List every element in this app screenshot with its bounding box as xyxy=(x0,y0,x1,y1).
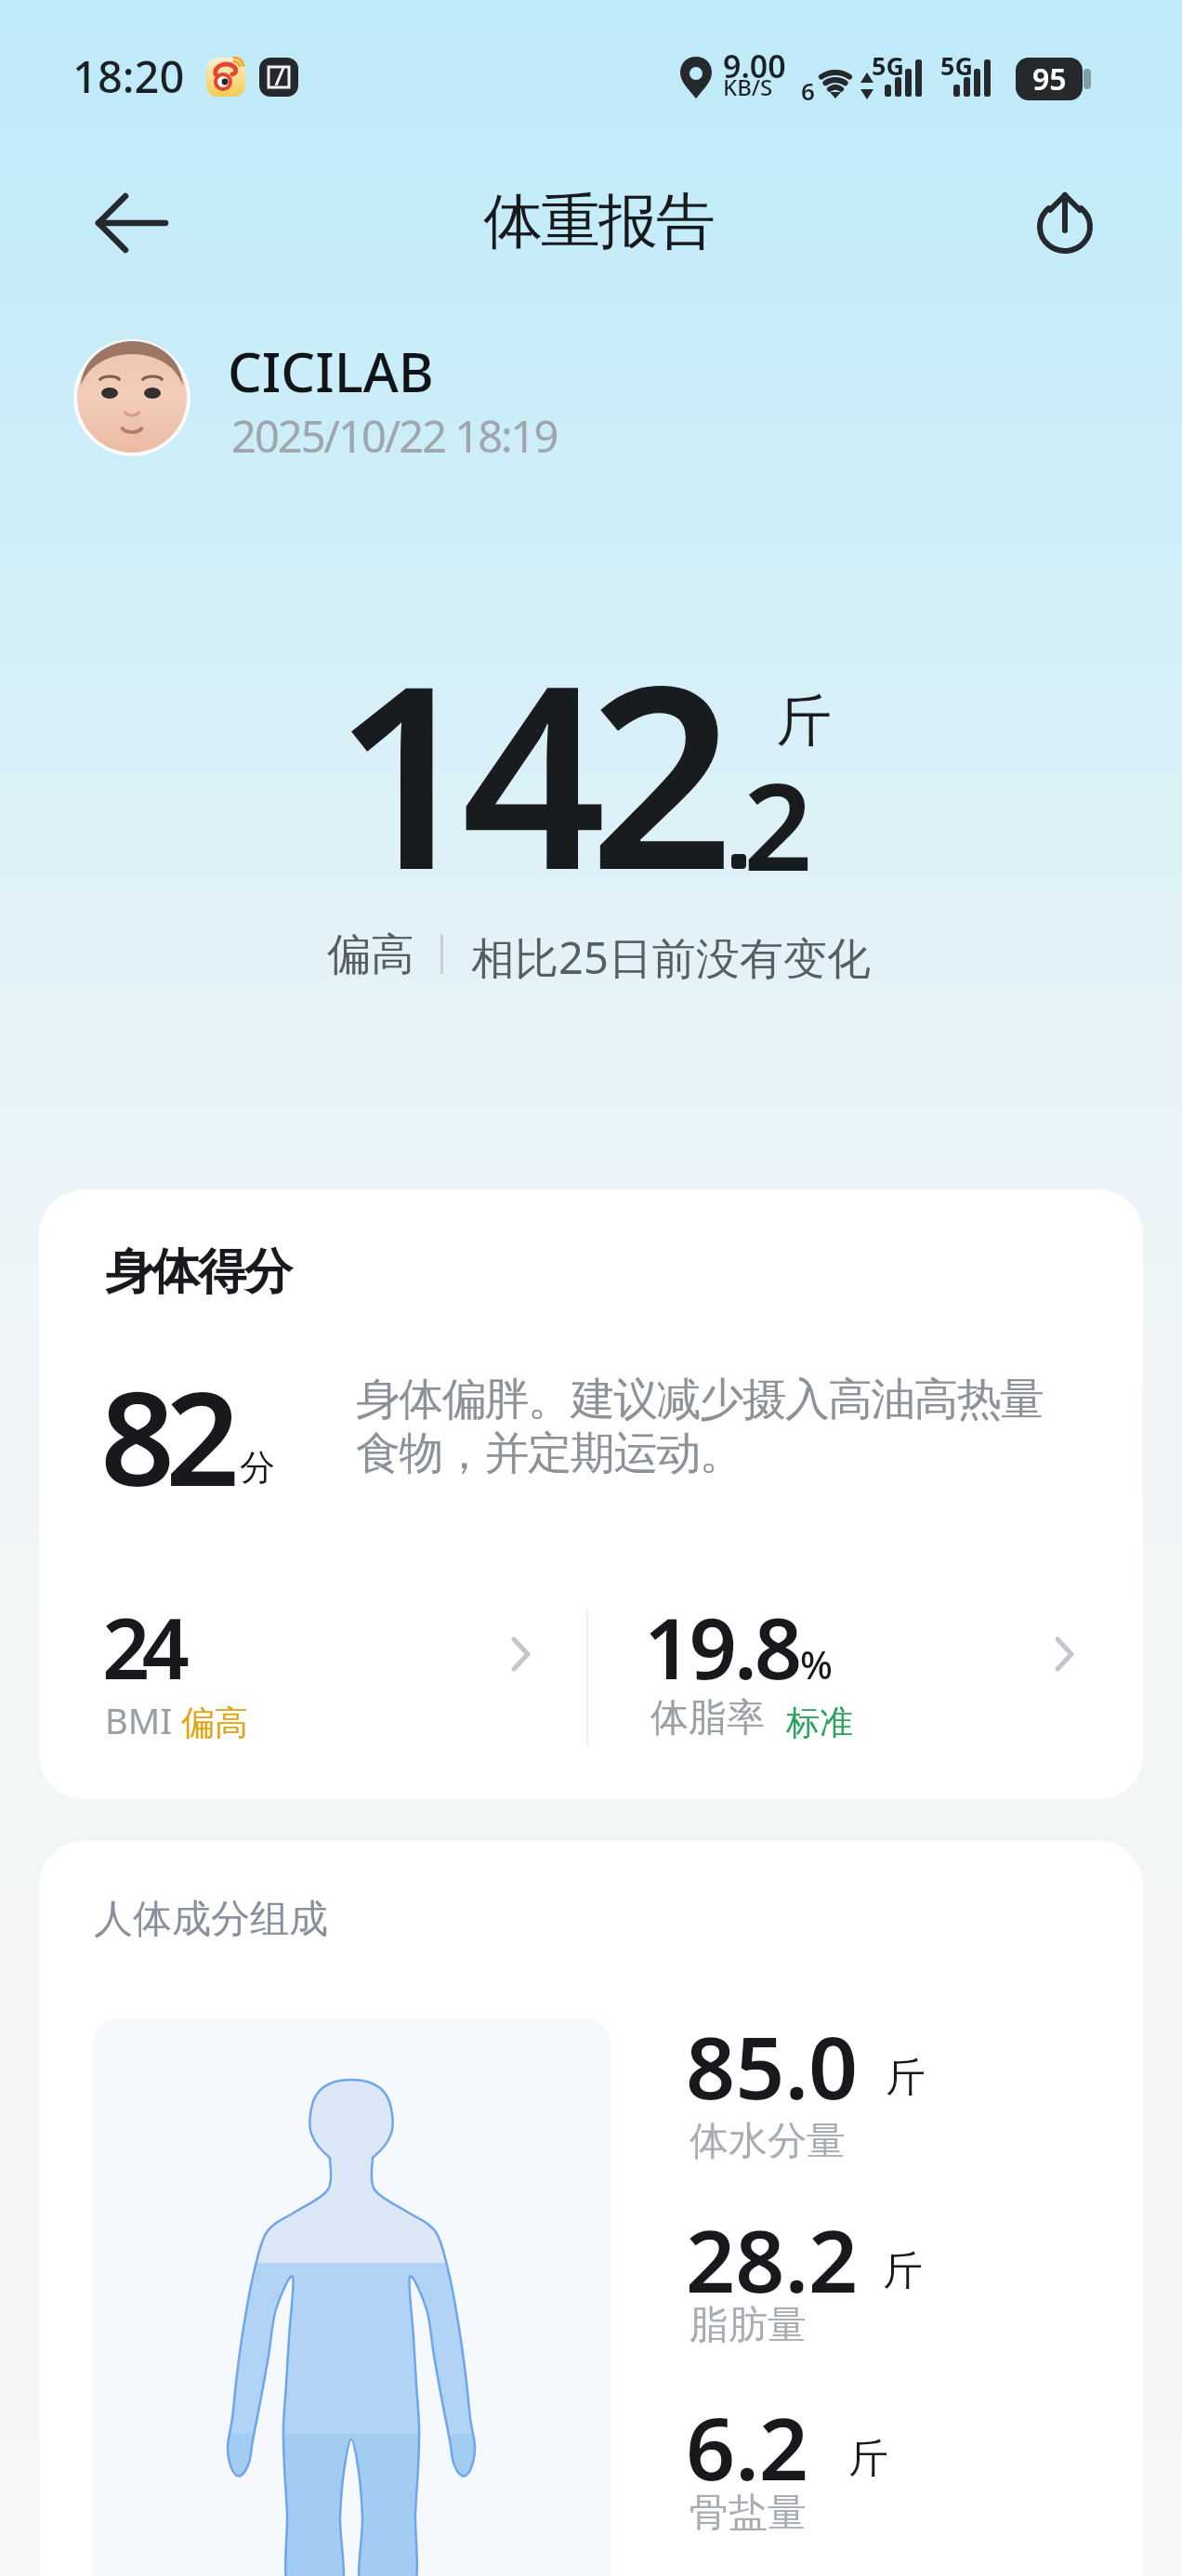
staticText: 6.2 xyxy=(686,2388,809,2506)
staticText: 骨盐量 xyxy=(689,2489,807,2538)
button[interactable]: 19.8 xyxy=(615,1561,1126,1775)
staticText: 24 xyxy=(102,1590,181,1704)
staticText: BMI xyxy=(105,1696,173,1744)
button[interactable] xyxy=(79,181,181,269)
button[interactable] xyxy=(73,339,190,456)
staticText: 5G xyxy=(940,48,973,83)
staticText: 85.0 xyxy=(686,2007,859,2125)
staticText: 斤 xyxy=(883,2246,923,2296)
staticText: 18:20 xyxy=(72,46,185,106)
staticText: 标准 xyxy=(786,1702,853,1743)
staticText: 斤 xyxy=(848,2434,888,2484)
staticText: 28.2 xyxy=(686,2201,859,2319)
staticText: 脂肪量 xyxy=(689,2301,807,2350)
staticText: 142 xyxy=(334,598,717,942)
staticText: 相比25日前没有变化 xyxy=(471,927,871,987)
button[interactable] xyxy=(1022,178,1110,267)
staticText: 体脂率 xyxy=(650,1694,765,1742)
staticText: 斤 xyxy=(776,686,832,756)
staticText: 6 xyxy=(801,74,815,107)
staticText: KB/S xyxy=(723,72,773,102)
staticText: 2 xyxy=(743,742,813,906)
staticText: 5G xyxy=(872,48,904,83)
staticText: 身体得分 xyxy=(106,1242,292,1303)
staticText: 偏高 xyxy=(327,927,414,982)
staticText: 2025/10/22 18:19 xyxy=(231,406,558,466)
staticText: 82 xyxy=(100,1347,231,1524)
staticText: 体重报告 xyxy=(484,184,715,259)
staticText: 19.8 xyxy=(644,1590,800,1704)
button[interactable]: 24 xyxy=(67,1561,578,1775)
staticText: % xyxy=(800,1638,833,1690)
staticText: 斤 xyxy=(886,2053,926,2103)
staticText: 人体成分组成 xyxy=(94,1895,328,1944)
staticText: 体水分量 xyxy=(689,2117,846,2166)
staticText: CICILAB xyxy=(228,335,434,408)
staticText: 95 xyxy=(1032,59,1067,99)
staticText: 9.00 xyxy=(723,45,786,87)
staticText: 偏高 xyxy=(181,1702,248,1743)
staticText: 身体偏胖。建议减少摄入高油高热量食物，并定期运动。 xyxy=(356,1372,1055,1482)
staticText: 分 xyxy=(240,1445,275,1490)
